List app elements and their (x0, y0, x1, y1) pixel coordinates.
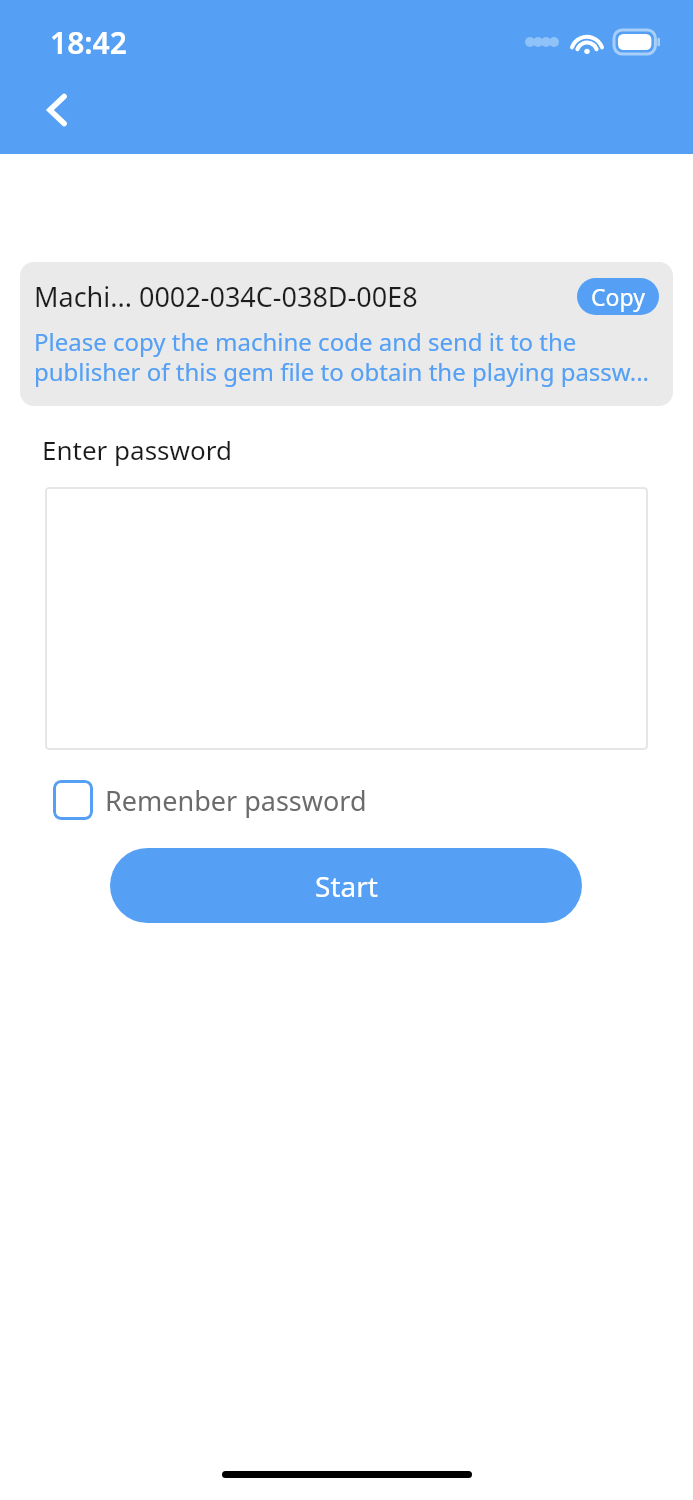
button[interactable]: Back (22, 74, 94, 146)
staticText: Remenber password (105, 782, 367, 819)
button[interactable] (45, 487, 648, 750)
staticText: 18:42 (50, 22, 127, 63)
button[interactable]: Remenber password (53, 780, 367, 820)
button[interactable]: Copy (577, 278, 659, 315)
staticText: Please copy the machine code and send it… (34, 325, 659, 388)
staticText: Machi... 0002-034C-038D-00E8 (34, 278, 577, 315)
button[interactable]: Start (110, 848, 582, 923)
staticText: Start (315, 867, 378, 905)
staticText: Enter password (42, 432, 232, 467)
staticText: Copy (591, 281, 645, 312)
